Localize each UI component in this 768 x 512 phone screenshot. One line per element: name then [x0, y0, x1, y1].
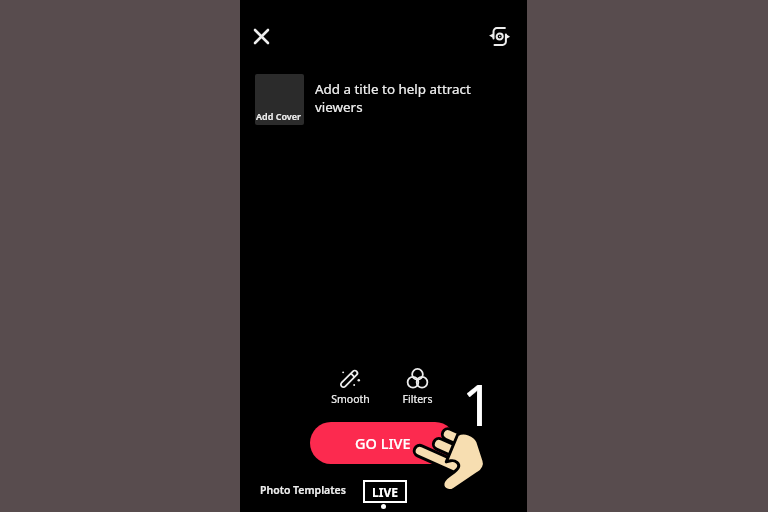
- button[interactable]: Photo Templates: [260, 483, 346, 497]
- staticText: 1: [462, 366, 495, 442]
- button[interactable]: Smooth: [324, 364, 377, 406]
- button[interactable]: GO LIVE: [310, 422, 456, 464]
- staticText: Photo Templates: [260, 483, 346, 497]
- staticText: Add a title to help attract viewers: [315, 80, 485, 116]
- button[interactable]: Switch camera: [482, 19, 516, 53]
- staticText: LIVE: [372, 484, 398, 500]
- button[interactable]: Add a title to help attract viewers: [315, 80, 485, 128]
- staticText: Add Cover: [256, 110, 301, 122]
- staticText: Smooth: [324, 392, 377, 406]
- button[interactable]: Add Cover: [255, 74, 304, 125]
- staticText: GO LIVE: [355, 433, 411, 453]
- button[interactable]: Filters: [391, 364, 444, 406]
- staticText: Filters: [391, 392, 444, 406]
- button[interactable]: LIVE: [365, 482, 405, 501]
- button[interactable]: Close: [244, 19, 278, 53]
